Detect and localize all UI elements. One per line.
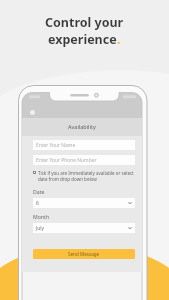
button[interactable]: Enter Your Name [36, 140, 132, 150]
button[interactable]: Immediately available [33, 171, 36, 174]
staticText: Send Message [68, 251, 100, 257]
staticText: Enter Your Name [36, 142, 76, 149]
staticText: July [36, 225, 45, 232]
staticText: . [117, 31, 121, 48]
staticText: Month [33, 213, 50, 220]
staticText: Availability [68, 123, 96, 130]
button[interactable]: Enter Your Phone Number [36, 155, 132, 165]
button[interactable]: 6 [36, 198, 132, 208]
staticText: Enter Your Phone Number [36, 157, 97, 164]
staticText: Date [33, 188, 45, 195]
button[interactable]: July [36, 223, 132, 233]
button[interactable]: Send Message [33, 249, 135, 259]
staticText: 6 [36, 200, 39, 207]
staticText: Tick if you are Immediately available or… [38, 170, 135, 183]
button[interactable]: Menu [30, 110, 35, 115]
staticText: Control your [45, 14, 124, 31]
staticText: experience [48, 31, 117, 48]
